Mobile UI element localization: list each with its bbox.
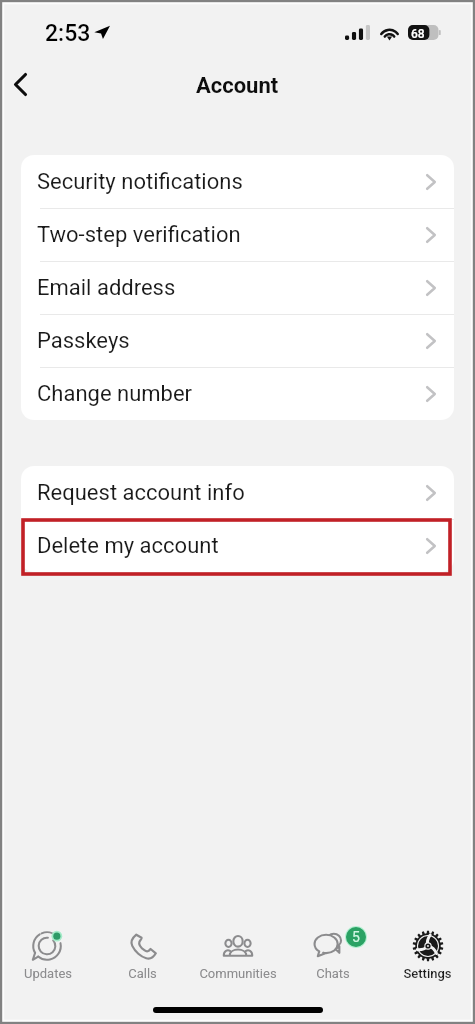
button[interactable]: Delete my account <box>21 520 454 572</box>
button[interactable]: Passkeys <box>21 315 454 367</box>
staticText: Change number <box>37 381 193 407</box>
button[interactable]: 5 <box>285 929 380 981</box>
staticText: 2:53 <box>45 20 91 47</box>
staticText: Chats <box>316 966 350 981</box>
staticText: Request account info <box>37 480 245 506</box>
button[interactable]: Security notifications <box>21 155 454 208</box>
staticText: Security notifications <box>37 169 243 195</box>
button[interactable]: Settings <box>380 929 475 981</box>
staticText: Settings <box>403 966 452 981</box>
staticText: Delete my account <box>37 533 219 559</box>
staticText: 68 <box>411 27 425 41</box>
staticText: Two-step verification <box>37 222 241 248</box>
staticText: 5 <box>352 929 360 945</box>
button[interactable]: Back <box>0 61 43 107</box>
button[interactable]: Change number <box>21 368 454 420</box>
button[interactable]: Communities <box>190 929 285 981</box>
button[interactable]: Calls <box>95 929 190 981</box>
staticText: Account <box>196 73 279 99</box>
button[interactable]: Email address <box>21 262 454 314</box>
staticText: Updates <box>24 966 72 981</box>
staticText: Communities <box>199 966 277 981</box>
staticText: Passkeys <box>37 328 130 354</box>
staticText: Calls <box>128 966 157 981</box>
button[interactable]: Request account info <box>21 466 454 519</box>
button[interactable]: Two-step verification <box>21 209 454 261</box>
button[interactable]: Updates <box>0 929 95 981</box>
staticText: Email address <box>37 275 176 301</box>
